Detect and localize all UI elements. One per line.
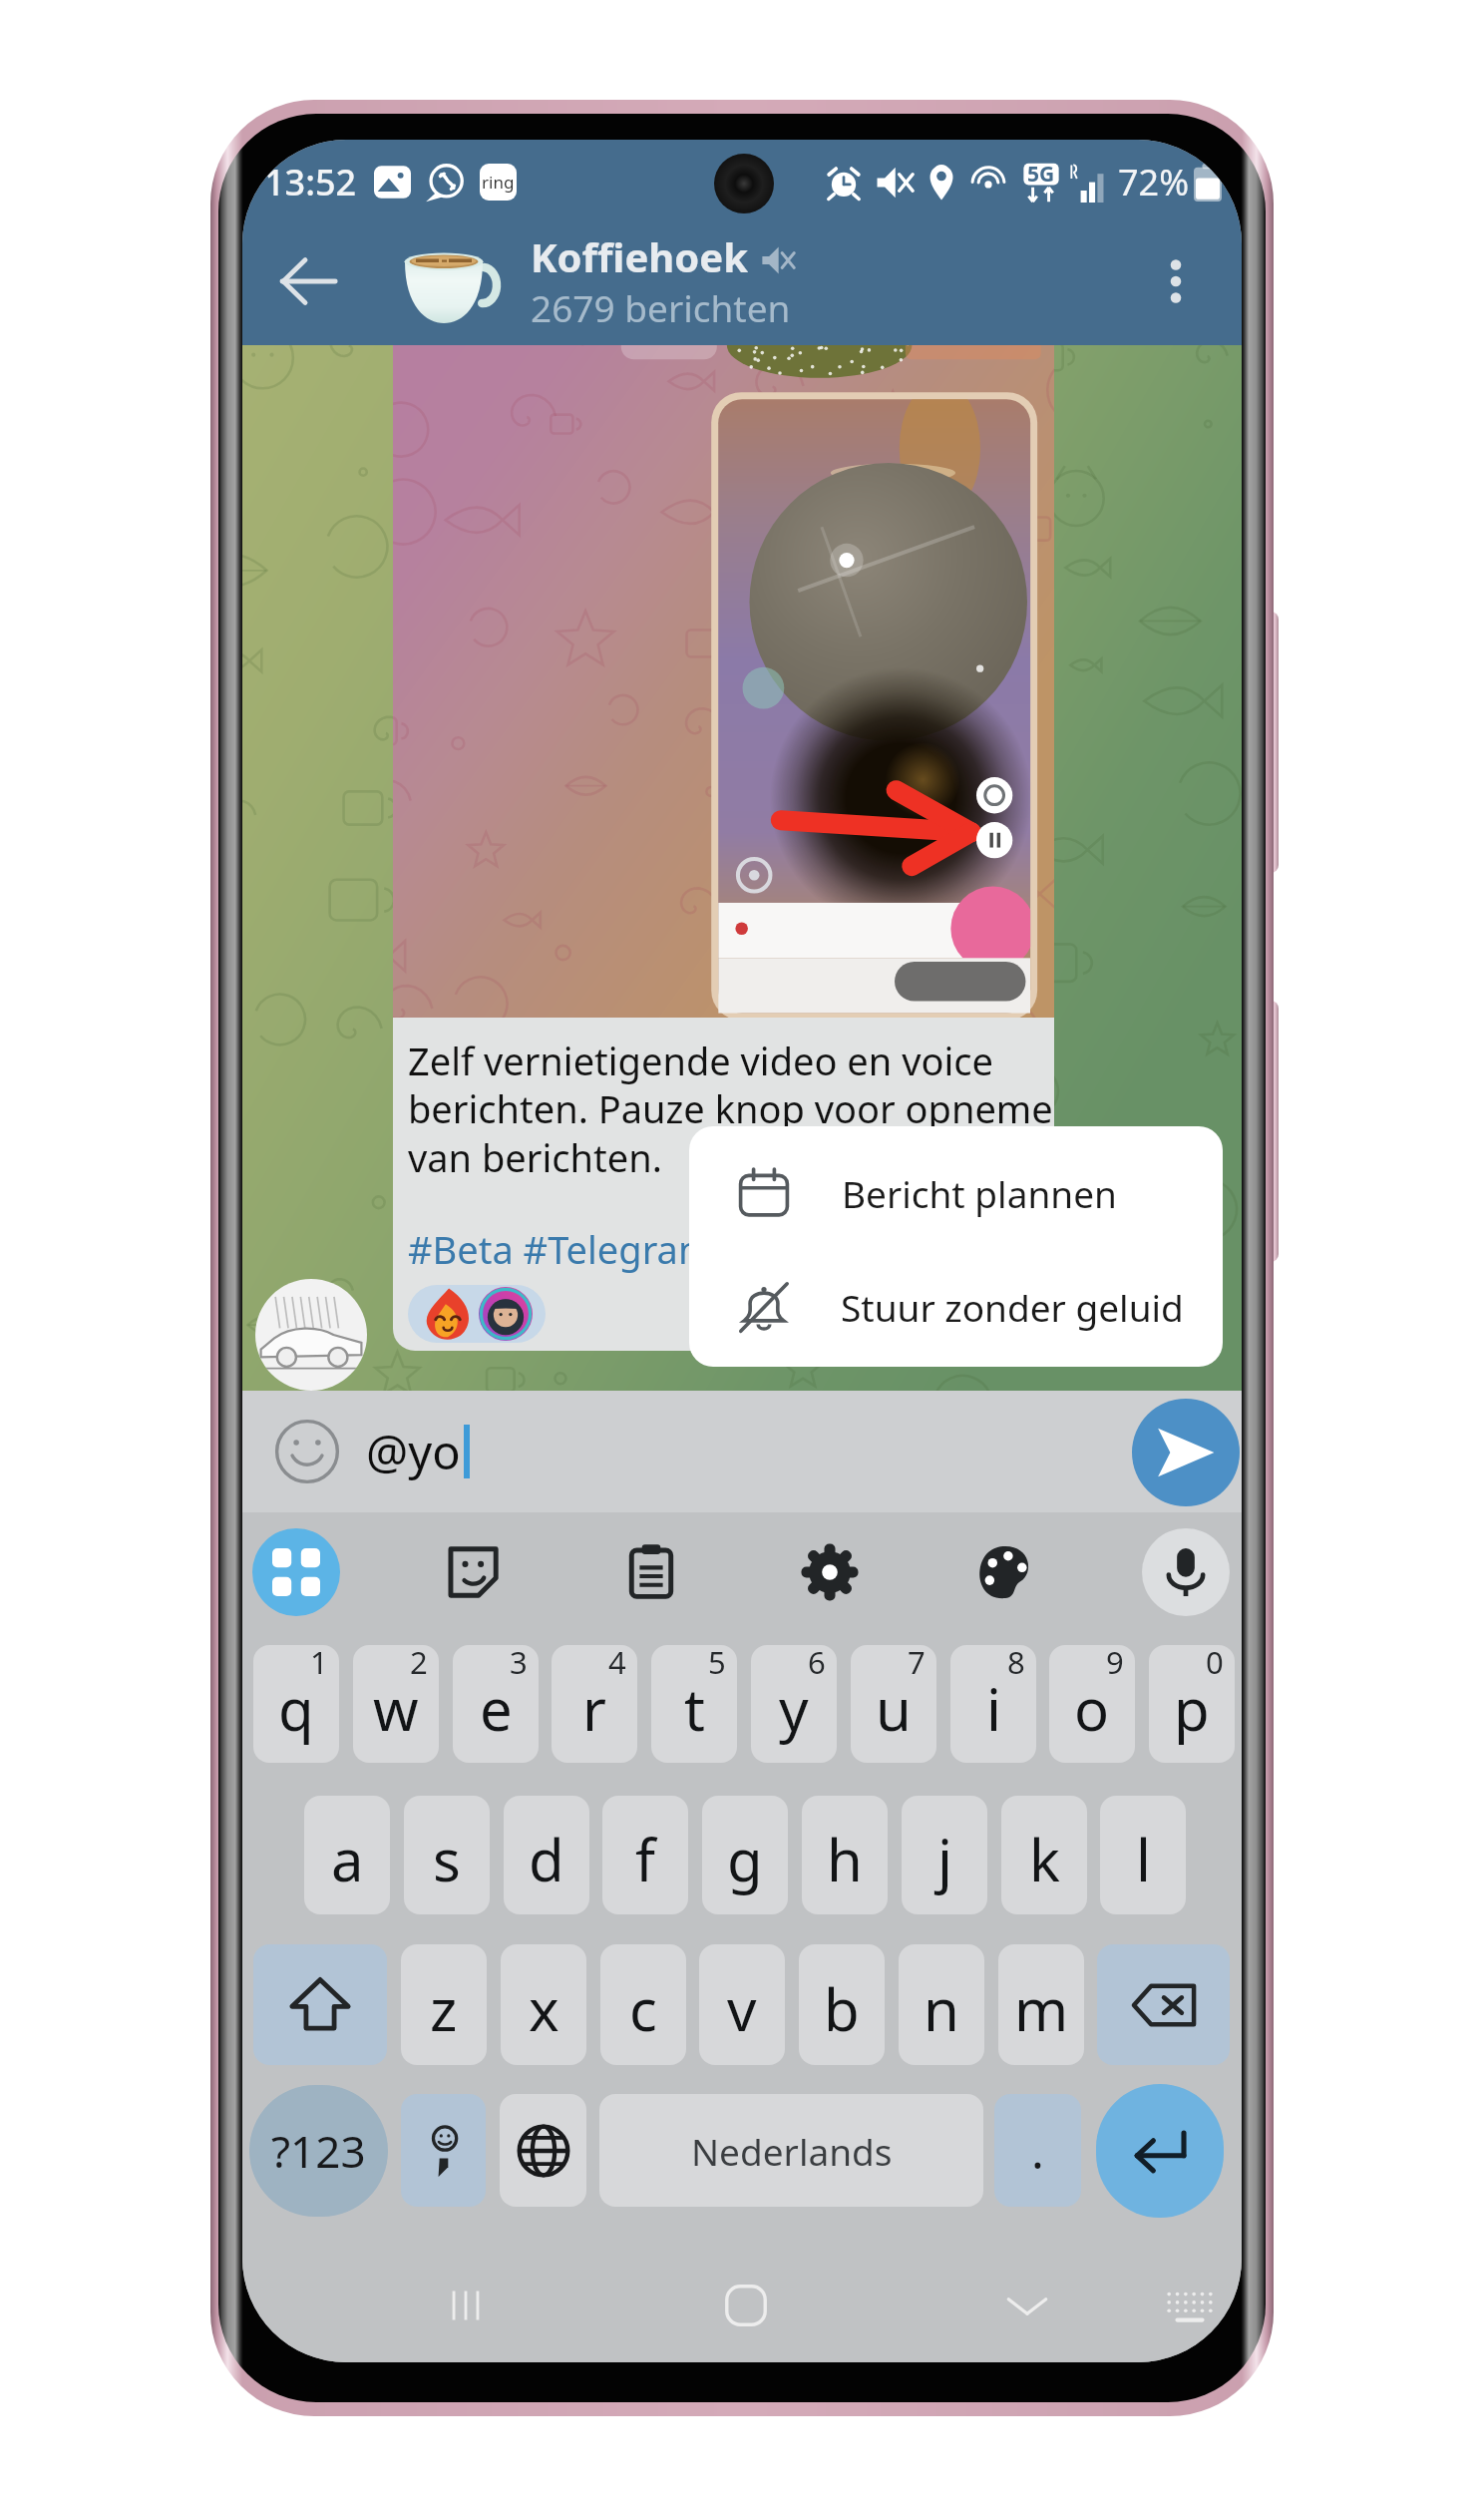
button[interactable]: Verstuur xyxy=(1132,1399,1240,1506)
button[interactable]: Emoji xyxy=(273,1418,341,1485)
staticText: Bericht plannen xyxy=(842,1168,1117,1218)
staticText: 1 xyxy=(310,1645,328,1683)
button[interactable]: h xyxy=(802,1796,888,1914)
staticText: 5G xyxy=(1027,160,1055,189)
button[interactable]: Reacties xyxy=(408,1285,546,1343)
button[interactable]: . xyxy=(994,2094,1081,2207)
staticText: s xyxy=(433,1820,461,1898)
button[interactable]: l xyxy=(1100,1796,1186,1914)
button[interactable]: v xyxy=(699,1944,785,2065)
staticText: a xyxy=(331,1820,364,1898)
button[interactable]: 7 xyxy=(851,1645,936,1763)
button[interactable]: ?123 xyxy=(249,2085,388,2217)
button[interactable]: Nederlands xyxy=(599,2094,983,2207)
button[interactable]: x xyxy=(501,1944,586,2065)
staticText: Nederlands xyxy=(691,2126,893,2176)
staticText: Stuur zonder geluid xyxy=(841,1282,1184,1332)
button[interactable]: Recente apps xyxy=(410,2250,522,2361)
button[interactable]: 6 xyxy=(751,1645,837,1763)
button[interactable]: Terug xyxy=(266,239,350,323)
button[interactable]: n xyxy=(899,1944,984,2065)
staticText: Koffiehoek xyxy=(531,229,748,283)
button[interactable]: 1 xyxy=(253,1645,339,1763)
staticText: 2 xyxy=(410,1645,428,1683)
staticText: g xyxy=(727,1820,763,1898)
button[interactable]: 8 xyxy=(950,1645,1036,1763)
button[interactable]: c xyxy=(600,1944,686,2065)
staticText: c xyxy=(629,1969,657,2048)
staticText: x xyxy=(529,1969,559,2048)
staticText: n xyxy=(924,1969,959,2048)
button[interactable]: Thema xyxy=(961,1528,1049,1616)
staticText: h xyxy=(827,1820,863,1898)
staticText: w xyxy=(373,1669,419,1748)
staticText: 72% xyxy=(1118,158,1190,207)
button[interactable]: m xyxy=(998,1944,1084,2065)
staticText: k xyxy=(1029,1820,1060,1898)
button[interactable]: 9 xyxy=(1049,1645,1135,1763)
button[interactable]: Start xyxy=(690,2250,802,2361)
button[interactable]: Koffiehoek xyxy=(525,223,1123,339)
staticText: ?123 xyxy=(271,2121,366,2181)
button[interactable]: Zelf vernietigende video en voice berich… xyxy=(393,305,1054,1351)
staticText: z xyxy=(430,1969,458,2048)
staticText: @yo xyxy=(366,1420,461,1483)
staticText: 13:52 xyxy=(264,158,357,207)
staticText: 5 xyxy=(708,1645,726,1683)
button[interactable]: 0 xyxy=(1149,1645,1235,1763)
button[interactable]: Instellingen xyxy=(786,1528,874,1616)
staticText: f xyxy=(635,1820,655,1898)
button[interactable]: Profielfoto xyxy=(399,227,499,327)
staticText: j xyxy=(937,1820,952,1898)
button[interactable]: a xyxy=(304,1796,390,1914)
button[interactable]: 2 xyxy=(353,1645,439,1763)
staticText: Zelf vernietigende video en voice berich… xyxy=(408,1035,1054,1184)
staticText: m xyxy=(1014,1969,1069,2048)
button[interactable]: Bericht plannen xyxy=(689,1140,1223,1246)
staticText: 8 xyxy=(1007,1645,1025,1683)
staticText: 3 xyxy=(510,1645,528,1683)
button[interactable]: f xyxy=(602,1796,688,1914)
button[interactable]: Taal wijzigen xyxy=(500,2094,586,2207)
staticText: o xyxy=(1074,1669,1110,1748)
staticText: 7 xyxy=(908,1645,926,1683)
staticText: v xyxy=(727,1969,757,2048)
button[interactable]: k xyxy=(1001,1796,1087,1914)
button[interactable]: Klembord xyxy=(607,1528,695,1616)
button[interactable]: s xyxy=(404,1796,490,1914)
staticText: 6 xyxy=(808,1645,826,1683)
button[interactable]: Enter xyxy=(1096,2084,1224,2218)
button[interactable]: Toetsenbordmodus xyxy=(252,1528,340,1616)
staticText: 2679 berichten xyxy=(531,282,791,332)
button[interactable]: 3 xyxy=(453,1645,539,1763)
button[interactable]: Spraakinvoer xyxy=(1142,1528,1230,1616)
button[interactable]: Shift xyxy=(253,1944,387,2065)
staticText: u xyxy=(876,1669,912,1748)
staticText: y xyxy=(779,1669,809,1748)
staticText: . xyxy=(1031,2118,1044,2183)
button[interactable]: Toetsenbord sluiten xyxy=(971,2250,1083,2361)
staticText: r xyxy=(582,1669,606,1748)
staticText: 0 xyxy=(1206,1645,1224,1683)
staticText: ring xyxy=(482,171,515,194)
button[interactable]: 5 xyxy=(651,1645,737,1763)
staticText: b xyxy=(824,1969,860,2048)
staticText: #Beta #Telegram xyxy=(408,1223,1054,1275)
button[interactable]: Stuur zonder geluid xyxy=(689,1246,1223,1367)
button[interactable]: Emoji en komma xyxy=(401,2094,486,2207)
button[interactable]: j xyxy=(902,1796,987,1914)
button[interactable]: Toetsenbord verbergen xyxy=(1134,2250,1242,2361)
button[interactable]: Wissen xyxy=(1097,1944,1230,2065)
staticText: p xyxy=(1174,1669,1210,1748)
button[interactable]: 4 xyxy=(552,1645,637,1763)
staticText: l xyxy=(1136,1820,1151,1898)
button[interactable]: z xyxy=(401,1944,487,2065)
button[interactable]: Avatar xyxy=(255,1279,367,1391)
button[interactable]: Stickers xyxy=(429,1528,517,1616)
staticText: q xyxy=(278,1669,314,1748)
button[interactable]: Meer opties xyxy=(1134,239,1218,323)
button[interactable]: g xyxy=(702,1796,788,1914)
button[interactable]: b xyxy=(799,1944,885,2065)
staticText: i xyxy=(986,1669,1001,1748)
button[interactable]: d xyxy=(504,1796,589,1914)
